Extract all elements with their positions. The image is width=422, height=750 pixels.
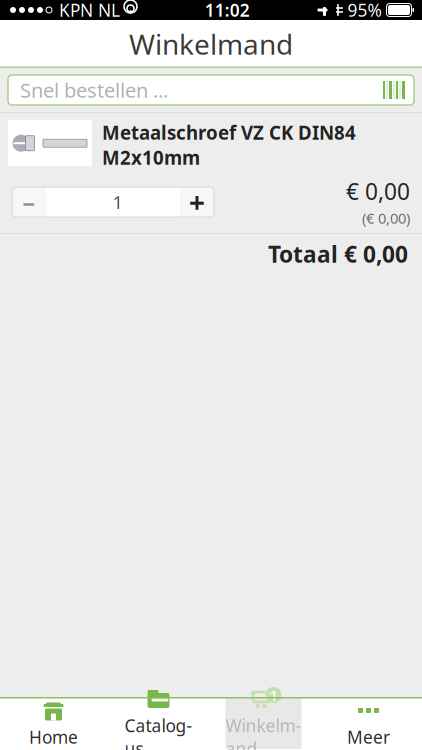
- staticText: 11:02: [205, 0, 250, 21]
- staticText: Meer: [347, 725, 390, 748]
- staticText: Winkelmand: [225, 714, 301, 750]
- staticText: KPN NL: [59, 0, 120, 21]
- staticText: Winkelmand: [129, 25, 293, 63]
- button[interactable]: Home: [15, 698, 91, 749]
- staticText: € 0,00: [346, 176, 410, 206]
- button[interactable]: Aantal verhogen: [180, 187, 214, 217]
- staticText: Catalogus: [124, 714, 192, 750]
- staticText: 95%: [347, 0, 381, 21]
- staticText: Home: [29, 725, 78, 748]
- button[interactable]: Meer: [330, 698, 406, 749]
- staticText: Snel bestellen ...: [20, 77, 168, 103]
- staticText: Totaal € 0,00: [268, 239, 408, 269]
- button[interactable]: Aantal verlagen: [12, 187, 46, 217]
- staticText: +: [189, 183, 205, 221]
- button[interactable]: Snel bestellen: [8, 75, 414, 105]
- staticText: –: [22, 185, 35, 219]
- staticText: (€ 0,00): [362, 208, 410, 228]
- button[interactable]: 1: [225, 698, 301, 749]
- button[interactable]: Catalogus: [120, 698, 196, 749]
- staticText: Metaalschroef VZ CK DIN84 M2x10mm: [102, 120, 356, 170]
- staticText: 1: [112, 190, 123, 214]
- staticText: 1: [269, 685, 277, 705]
